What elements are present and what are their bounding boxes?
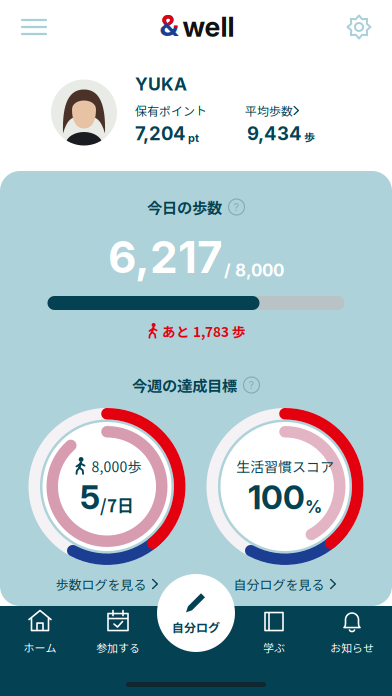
staticText: / 8,000 [224,260,284,281]
staticText: 7,204 [135,122,186,145]
staticText: 今週の達成目標 [132,374,237,396]
button[interactable]: 参加する [79,606,157,658]
button[interactable]: YUKA [0,54,392,171]
staticText: ? [248,378,254,392]
staticText: 今日の歩数 [147,196,222,218]
staticText: % [305,496,322,517]
staticText: ホーム [23,639,56,655]
staticText: well [182,11,234,43]
staticText: 6,217 [108,230,223,284]
staticText: 8,000歩 [91,456,141,476]
staticText: YUKA [135,73,187,95]
button[interactable]: 歩数ログを見る [28,571,185,597]
staticText: pt [188,131,199,145]
staticText: 歩 [304,129,315,145]
button[interactable]: お知らせ [313,606,391,658]
staticText: 保有ポイント [135,102,207,119]
staticText: 自分ログを見る [233,575,324,593]
staticText: 参加する [96,639,140,655]
staticText: & [159,8,178,43]
button[interactable]: ホーム [1,606,79,658]
staticText: 生活習慣スコア [236,456,334,476]
staticText: 100 [248,477,305,517]
staticText: /7日 [100,492,134,517]
button[interactable]: Menu [10,6,58,48]
button[interactable]: 学ぶ [235,606,313,658]
staticText: 自分ログ [172,618,220,636]
staticText: 歩数ログを見る [55,575,146,593]
staticText: & [159,8,178,43]
staticText: 9,434 [247,122,302,145]
staticText: 平均歩数 [245,102,293,119]
staticText: 学ぶ [263,639,285,655]
button[interactable]: Settings [336,4,382,50]
staticText: あと 1,783 歩 [162,321,246,341]
staticText: 5 [80,477,100,517]
staticText: お知らせ [330,639,374,655]
button[interactable]: 自分ログ [157,574,235,652]
button[interactable]: 自分ログを見る [206,571,363,597]
staticText: ? [233,200,239,214]
